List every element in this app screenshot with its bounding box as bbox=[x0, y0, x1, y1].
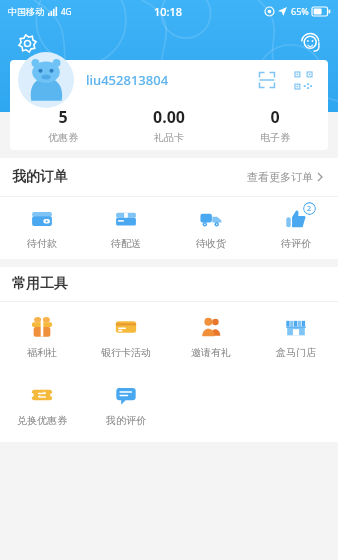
staticText: 待收货 bbox=[196, 237, 226, 250]
staticText: 礼品卡 bbox=[154, 131, 184, 144]
button[interactable]: 5 bbox=[10, 100, 116, 150]
button[interactable]: 兑换优惠券 bbox=[0, 370, 84, 438]
staticText: 优惠券 bbox=[48, 131, 78, 144]
staticText: 65% bbox=[291, 5, 309, 17]
staticText: 5 bbox=[58, 106, 68, 128]
button[interactable]: 2 bbox=[253, 197, 338, 259]
staticText: 待付款 bbox=[27, 237, 57, 250]
staticText: 2 bbox=[307, 204, 312, 214]
staticText: 兑换优惠券 bbox=[17, 414, 67, 427]
staticText: 待配送 bbox=[111, 237, 141, 250]
staticText: liu452813804 bbox=[86, 71, 169, 89]
button[interactable]: 邀请有礼 bbox=[168, 302, 253, 370]
staticText: 待评价 bbox=[281, 237, 311, 250]
staticText: 我的订单 bbox=[12, 168, 68, 186]
button[interactable]: Avatar bbox=[18, 52, 74, 108]
button[interactable]: 待付款 bbox=[0, 197, 84, 259]
staticText: 邀请有礼 bbox=[191, 346, 231, 359]
button[interactable]: 我的评价 bbox=[84, 370, 168, 438]
staticText: 10:18 bbox=[154, 4, 183, 19]
staticText: 0.00 bbox=[153, 106, 185, 128]
staticText: 4G bbox=[61, 6, 72, 17]
button[interactable]: 0.00 bbox=[116, 100, 222, 150]
button[interactable]: Settings bbox=[12, 28, 42, 58]
staticText: 查看更多订单 bbox=[247, 170, 313, 184]
staticText: 我的评价 bbox=[106, 414, 146, 427]
staticText: 盒马门店 bbox=[276, 346, 316, 359]
button[interactable]: 福利社 bbox=[0, 302, 84, 370]
button[interactable]: 待配送 bbox=[84, 197, 168, 259]
button[interactable]: 银行卡活动 bbox=[84, 302, 168, 370]
staticText: 中国移动 bbox=[8, 6, 44, 17]
staticText: 电子券 bbox=[260, 131, 290, 144]
staticText: 常用工具 bbox=[12, 275, 68, 293]
button[interactable]: 待收货 bbox=[168, 197, 253, 259]
staticText: 福利社 bbox=[27, 346, 57, 359]
button[interactable]: Scan bbox=[254, 67, 280, 93]
button[interactable]: 盒马门店 bbox=[253, 302, 338, 370]
staticText: 0 bbox=[270, 106, 280, 128]
button[interactable]: QR code bbox=[290, 67, 316, 93]
button[interactable]: 查看更多订单 bbox=[243, 166, 328, 188]
button[interactable]: Customer service bbox=[296, 28, 326, 58]
staticText: 银行卡活动 bbox=[101, 346, 151, 359]
button[interactable]: 0 bbox=[222, 100, 328, 150]
